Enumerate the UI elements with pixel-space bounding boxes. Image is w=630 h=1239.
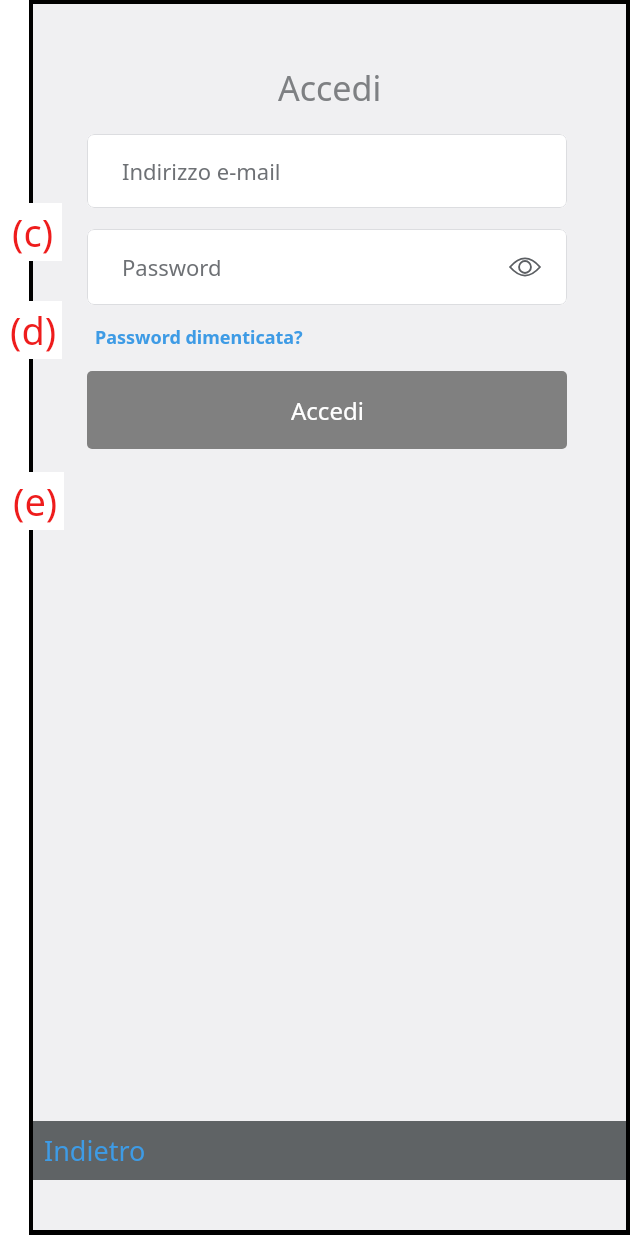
staticText: (e) [13, 475, 58, 527]
staticText: Accedi [291, 394, 364, 427]
button[interactable]: Accedi [87, 371, 567, 449]
staticText: Accedi [278, 65, 382, 111]
button[interactable]: Indirizzo e-mail [87, 134, 567, 208]
staticText: (c) [12, 206, 54, 258]
staticText: Indirizzo e-mail [122, 156, 281, 186]
button[interactable]: Indietro [33, 1121, 626, 1180]
staticText: Password [122, 252, 222, 282]
staticText: Indietro [44, 1132, 146, 1169]
staticText: (d) [10, 304, 57, 356]
button[interactable]: Password dimenticata? [95, 325, 303, 350]
button[interactable]: Password [87, 229, 567, 305]
staticText: Password dimenticata? [95, 325, 303, 350]
button[interactable]: Mostra password [505, 247, 545, 287]
